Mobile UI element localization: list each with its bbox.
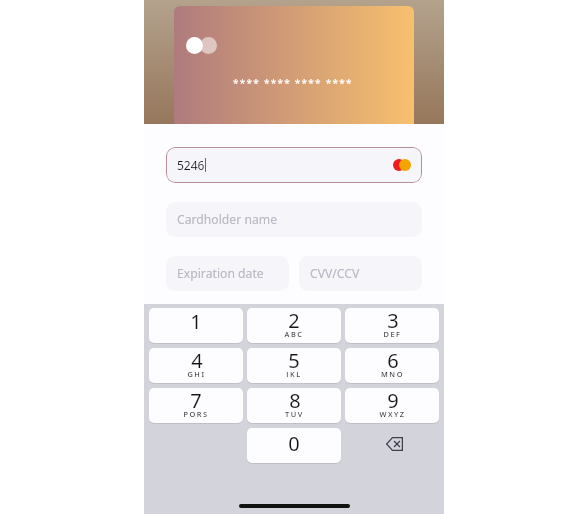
staticText: JKL: [286, 369, 302, 377]
staticText: 5: [288, 348, 300, 374]
button[interactable]: 7: [149, 388, 243, 423]
button[interactable]: Cardholder name: [166, 202, 422, 237]
button[interactable]: 2: [247, 308, 341, 343]
staticText: **** **** **** ****: [233, 76, 353, 90]
button[interactable]: 4: [149, 348, 243, 383]
staticText: GHI: [187, 369, 206, 377]
staticText: 4: [191, 348, 203, 374]
button[interactable]: 3: [345, 308, 439, 343]
staticText: 0: [288, 430, 300, 457]
staticText: MNO: [381, 369, 404, 377]
staticText: ABC: [284, 329, 304, 337]
staticText: WXYZ: [379, 409, 406, 417]
button[interactable]: 8: [247, 388, 341, 423]
staticText: 1: [190, 308, 202, 335]
staticText: 5246: [177, 157, 205, 173]
button[interactable]: 5: [247, 348, 341, 383]
button[interactable]: Expiration date: [166, 256, 289, 291]
staticText: 2: [288, 308, 300, 334]
button[interactable]: CVV/CCV: [299, 256, 422, 291]
staticText: DEF: [383, 329, 402, 337]
button[interactable]: 0: [247, 428, 341, 463]
staticText: Expiration date: [177, 265, 264, 282]
staticText: 6: [387, 348, 399, 374]
button[interactable]: 9: [345, 388, 439, 423]
staticText: 8: [289, 388, 301, 414]
staticText: CVV/CCV: [310, 265, 360, 282]
button[interactable]: 6: [345, 348, 439, 383]
staticText: 3: [387, 308, 399, 334]
staticText: Cardholder name: [177, 211, 278, 228]
staticText: 7: [190, 388, 202, 414]
staticText: PQRS: [183, 409, 209, 417]
staticText: TUV: [285, 409, 304, 417]
button[interactable]: 1: [149, 308, 243, 343]
button[interactable]: 5246: [166, 147, 422, 183]
button[interactable]: Backspace: [343, 428, 441, 463]
staticText: 9: [387, 388, 399, 414]
